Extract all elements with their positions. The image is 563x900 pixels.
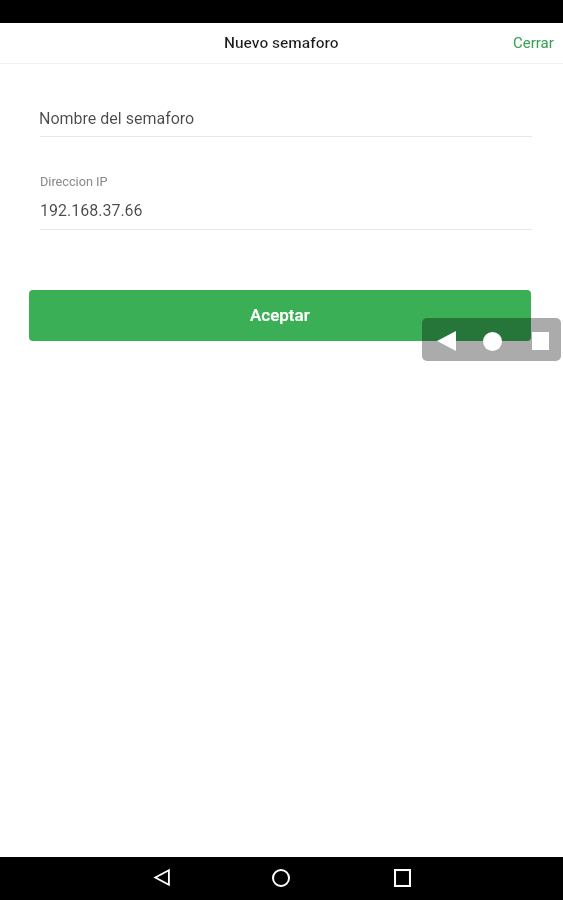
button[interactable]: Back [142, 858, 182, 897]
button[interactable]: Nombre del semaforo [40, 100, 532, 137]
staticText: Aceptar [250, 305, 310, 325]
button[interactable]: Home [472, 321, 512, 361]
button[interactable]: Aceptar [29, 290, 531, 341]
button[interactable]: Home [261, 858, 301, 897]
button[interactable]: Cerrar [504, 24, 563, 62]
button[interactable]: Recent apps [382, 858, 422, 897]
staticText: Cerrar [513, 34, 554, 52]
staticText: Direccion IP [40, 174, 108, 189]
button[interactable]: Recent apps [520, 321, 560, 361]
button[interactable]: Back [426, 321, 466, 361]
staticText: Nombre del semaforo [39, 109, 195, 128]
staticText: 192.168.37.66 [40, 201, 143, 220]
staticText: Nuevo semaforo [224, 34, 339, 52]
button[interactable]: Direccion IP [40, 170, 532, 230]
